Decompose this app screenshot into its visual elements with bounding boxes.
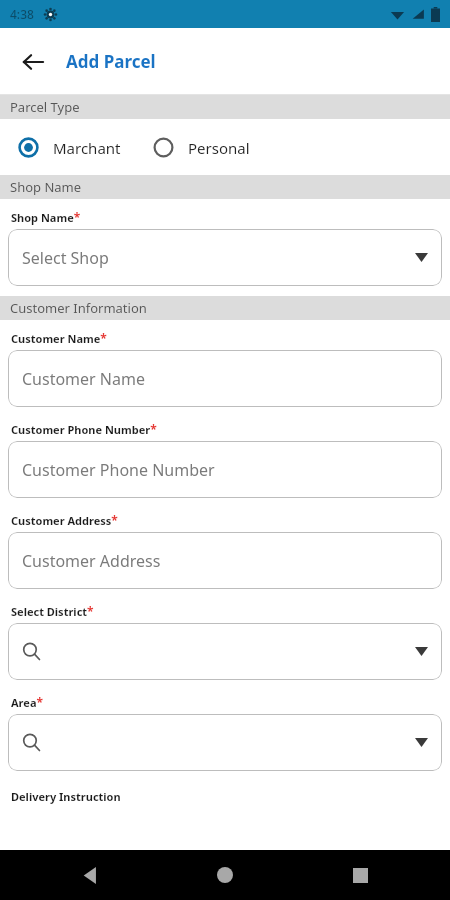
button[interactable]: Recent apps [315,850,405,900]
button[interactable]: Customer Address [8,532,442,589]
button[interactable] [8,623,442,680]
staticText: Customer Phone Number* [11,421,157,437]
staticText: Customer Name* [11,330,107,346]
staticText: Customer Name [22,368,145,390]
staticText: Select District* [11,603,94,619]
staticText: Customer Address [22,550,161,572]
button[interactable]: Customer Phone Number [8,441,442,498]
staticText: Parcel Type [10,98,80,116]
staticText: Personal [188,138,250,158]
button[interactable]: Back [45,850,135,900]
staticText: Customer Phone Number [22,459,215,481]
button[interactable]: Back [0,28,66,95]
button[interactable]: Customer Name [8,350,442,407]
button[interactable]: Home [180,850,270,900]
button[interactable] [8,714,442,771]
staticText: Area* [11,694,43,710]
staticText: Customer Information [10,299,147,317]
staticText: Customer Address* [11,512,118,528]
button[interactable]: Personal [153,137,250,158]
staticText: Shop Name* [11,209,81,225]
staticText: Delivery Instruction [11,789,121,804]
staticText: Add Parcel [66,50,156,73]
staticText: Select Shop [22,247,109,269]
button[interactable]: Select Shop [8,229,442,286]
staticText: Shop Name [10,178,82,196]
staticText: 4:38 [10,6,34,22]
button[interactable]: Marchant [18,137,121,158]
staticText: Marchant [53,138,121,158]
